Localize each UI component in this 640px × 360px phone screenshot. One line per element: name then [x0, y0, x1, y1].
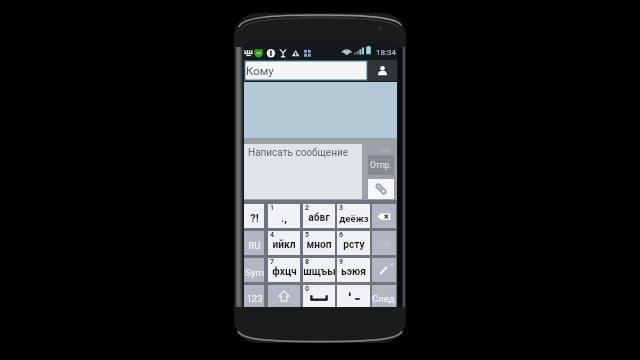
staticText: ийкл	[272, 239, 296, 251]
staticText: След.	[372, 293, 396, 304]
button[interactable]: 1	[268, 204, 300, 228]
button[interactable]: Sym	[244, 258, 264, 282]
button[interactable]: 7	[268, 258, 300, 282]
button[interactable]: dot	[337, 285, 370, 307]
staticText: .,	[281, 212, 287, 225]
staticText: ?!	[250, 212, 259, 225]
staticText: 160	[377, 145, 390, 154]
button[interactable]: ?!	[244, 204, 264, 228]
button[interactable]: 9	[337, 258, 370, 282]
staticText: 9	[339, 258, 344, 266]
staticText: ьэюя	[341, 266, 366, 278]
staticText: мноп	[306, 239, 332, 251]
staticText: Кому	[246, 64, 274, 77]
staticText: RU	[248, 240, 261, 251]
button[interactable]: 2	[303, 204, 335, 228]
button[interactable]: Отпр.	[368, 155, 394, 175]
staticText: 6	[339, 231, 344, 239]
staticText: 5	[305, 231, 310, 239]
staticText: 7	[270, 258, 275, 266]
staticText: рсту	[343, 239, 365, 251]
staticText: 18:34	[376, 48, 396, 57]
button[interactable]: 123	[244, 285, 264, 307]
button[interactable]: RU	[244, 231, 264, 255]
staticText: 4	[270, 231, 275, 239]
staticText: 8	[305, 258, 310, 266]
staticText: 1	[270, 204, 275, 212]
button[interactable]: 6	[337, 231, 370, 255]
staticText: шщъы	[303, 266, 335, 278]
button[interactable]: Add recipient	[368, 60, 397, 81]
staticText: Sym	[245, 267, 264, 278]
staticText: абвг	[308, 212, 330, 224]
button[interactable]: Attach	[368, 179, 394, 199]
button[interactable]: shift	[268, 285, 300, 307]
button[interactable]: След.	[372, 285, 396, 307]
button[interactable]: pen	[372, 258, 396, 282]
staticText: деёжз	[339, 213, 369, 224]
button[interactable]: Кому	[244, 60, 368, 81]
button[interactable]: 4	[268, 231, 300, 255]
button[interactable]: 5	[303, 231, 335, 255]
staticText: 3	[339, 204, 344, 212]
button[interactable]: 3	[337, 204, 370, 228]
staticText: 0	[305, 285, 310, 293]
button[interactable]: del	[372, 204, 396, 228]
staticText: 2	[305, 204, 310, 212]
staticText: 123	[246, 293, 263, 304]
staticText: Написать сообщение	[248, 147, 348, 159]
button[interactable]: Написать сообщение	[244, 144, 362, 199]
staticText: фхцч	[272, 266, 297, 278]
button[interactable]: 8	[303, 258, 335, 282]
button[interactable]: space	[303, 285, 335, 307]
staticText: Отпр.	[370, 160, 392, 170]
